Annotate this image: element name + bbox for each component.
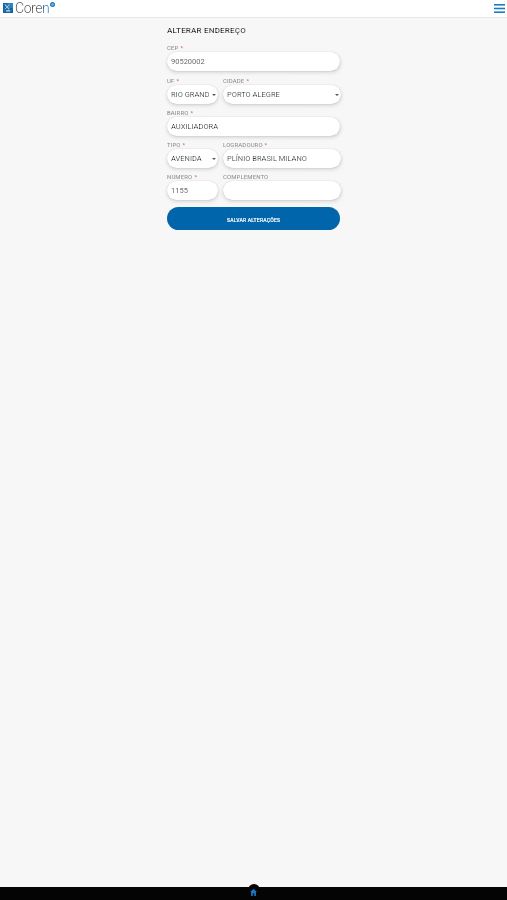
staticText: COMPLEMENTO [223,173,269,180]
staticText: * [181,141,186,148]
staticText: Core [15,0,42,16]
button[interactable] [223,181,341,200]
button[interactable]: AUXILIADORA [167,117,340,136]
staticText: PLÍNIO BRASIL MILANO [227,154,307,163]
staticText: ALTERAR ENDEREÇO [167,25,246,34]
button[interactable]: 90520002 [167,52,340,71]
button[interactable]: SALVAR ALTERAÇÕES [167,207,340,230]
staticText: AUXILIADORA [171,122,219,131]
staticText: AVENIDA [171,154,202,163]
staticText: BAIRRO [167,109,189,116]
staticText: PORTO ALEGRE [227,90,280,99]
staticText: * [189,109,194,116]
staticText: 90520002 [171,57,205,66]
staticText: * [245,77,250,84]
staticText: * [193,173,198,180]
button[interactable]: 1155 [167,181,218,200]
staticText: UF [167,77,175,84]
button[interactable]: Home [248,884,260,896]
staticText: n [42,0,50,16]
button[interactable]: AVENIDA [167,149,218,168]
staticText: * [175,77,180,84]
staticText: * [263,141,268,148]
staticText: 1155 [171,186,188,195]
staticText: LOGRADOURO [223,141,263,148]
staticText: RIO GRANDE [171,90,209,99]
staticText: NÚMERO [167,173,193,180]
staticText: CIDADE [223,77,245,84]
button[interactable]: PORTO ALEGRE [223,85,341,104]
staticText: * [179,44,184,51]
button[interactable]: PLÍNIO BRASIL MILANO [223,149,341,168]
button[interactable]: Menu [490,0,507,17]
staticText: CEP [167,44,179,51]
staticText: TIPO [167,141,181,148]
staticText: SALVAR ALTERAÇÕES [227,217,281,223]
button[interactable]: RIO GRANDE [167,85,218,104]
button[interactable]: Core [3,0,55,16]
